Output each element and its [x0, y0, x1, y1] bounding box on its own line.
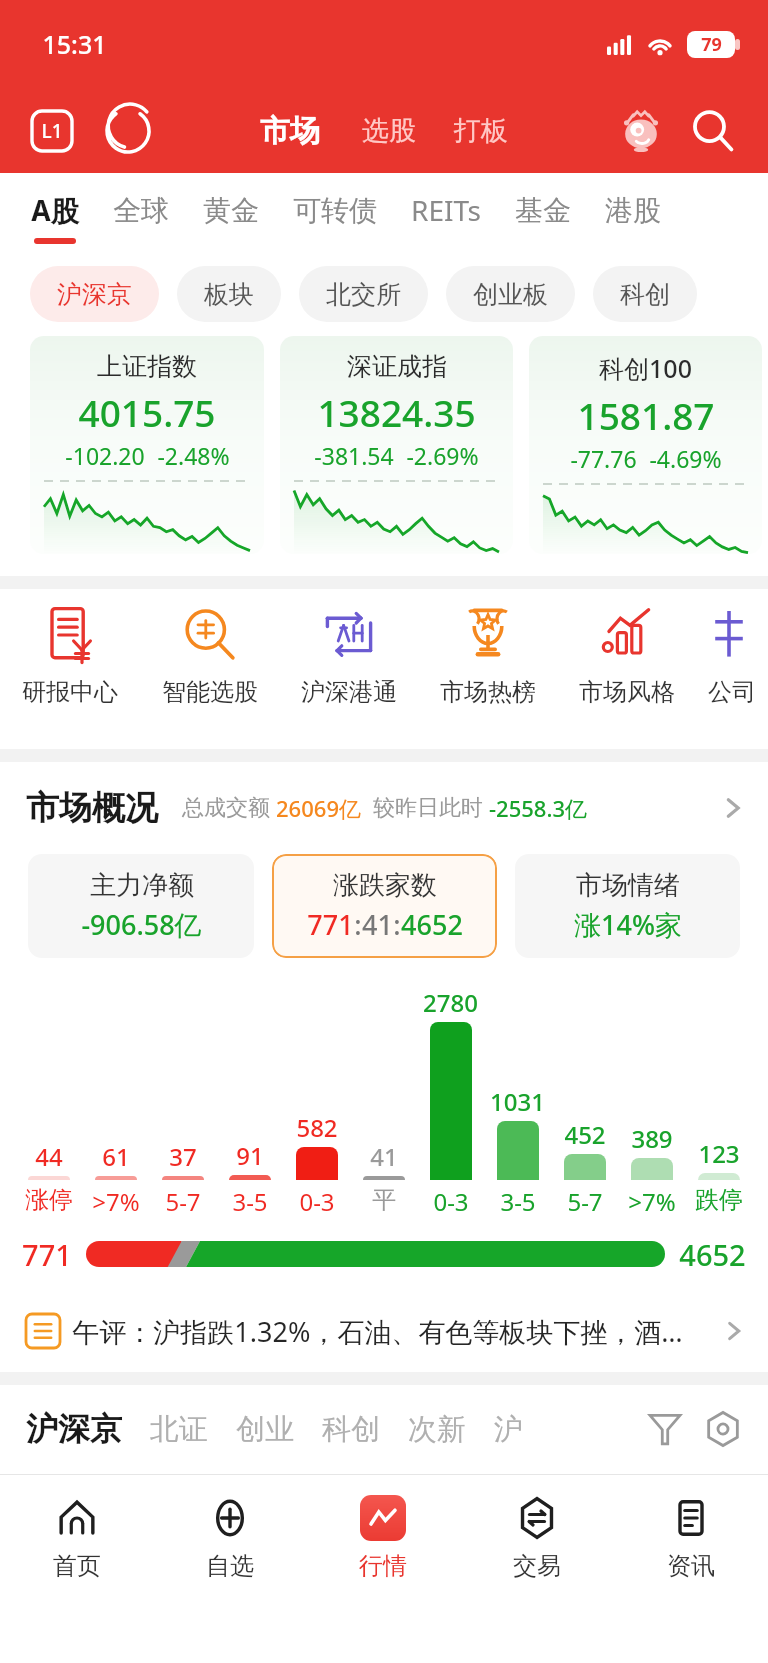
button[interactable]: 可转债 — [276, 173, 394, 252]
staticText: 自选 — [206, 1551, 254, 1581]
button[interactable]: 港股 — [588, 173, 678, 252]
staticText: -77.76 — [570, 443, 637, 474]
staticText: 涨14%家 — [574, 906, 682, 943]
button[interactable]: 市场风格 — [557, 605, 696, 749]
staticText: 44 — [35, 1140, 63, 1173]
button[interactable]: 61 — [82, 1140, 149, 1180]
button[interactable]: 44 — [16, 1140, 82, 1180]
staticText: 0-3 — [433, 1185, 469, 1218]
staticText: 1031 — [490, 1085, 545, 1118]
staticText: 79 — [701, 32, 722, 57]
button[interactable]: 主力净额 — [28, 854, 254, 958]
button[interactable]: 123 — [685, 1137, 752, 1180]
button[interactable]: 创业 — [236, 1411, 322, 1448]
button[interactable]: 2780 — [417, 986, 484, 1180]
button[interactable]: 资讯 — [614, 1475, 768, 1605]
button[interactable]: 1031 — [484, 1085, 551, 1180]
button[interactable]: 市场热榜 — [418, 605, 557, 749]
button[interactable]: 首页 — [0, 1475, 153, 1605]
button[interactable]: 科创 — [593, 266, 697, 322]
button[interactable]: 37 — [149, 1140, 216, 1180]
staticText: A股 — [31, 191, 79, 229]
staticText: 5-7 — [567, 1185, 603, 1218]
button[interactable]: 市场 — [248, 112, 332, 150]
staticText: 可转债 — [293, 193, 377, 228]
button[interactable]: 全球 — [96, 173, 186, 252]
button[interactable]: 公司 — [696, 605, 768, 749]
staticText: >7% — [628, 1185, 676, 1218]
button[interactable]: Assistant — [612, 102, 670, 160]
button[interactable]: 自选 — [153, 1475, 306, 1605]
staticText: 创业 — [236, 1411, 294, 1448]
button[interactable]: 北证 — [150, 1411, 236, 1448]
button[interactable]: Search — [684, 102, 742, 160]
staticText: : — [354, 906, 362, 943]
staticText: 全球 — [113, 193, 169, 228]
button[interactable]: 北交所 — [299, 266, 428, 322]
button[interactable]: 行情 — [306, 1475, 460, 1605]
staticText: 26069亿 — [276, 793, 361, 823]
staticText: 市场概况 — [26, 787, 158, 829]
staticText: -2.69% — [406, 440, 479, 471]
button[interactable]: 389 — [618, 1122, 685, 1180]
staticText: 北交所 — [326, 279, 401, 310]
staticText: 涨停 — [25, 1185, 73, 1215]
button[interactable]: 41 — [350, 1140, 417, 1180]
button[interactable]: 研报中心 — [0, 605, 140, 749]
button[interactable]: Filter — [638, 1402, 692, 1456]
staticText: 2780 — [423, 986, 478, 1019]
button[interactable]: 582 — [283, 1111, 350, 1180]
staticText: 交易 — [513, 1551, 561, 1581]
staticText: : — [393, 906, 401, 943]
button[interactable]: 市场概况 — [0, 762, 768, 854]
button[interactable]: 市场情绪 — [515, 854, 740, 958]
staticText: 4015.75 — [78, 387, 216, 437]
button[interactable]: 选股 — [350, 114, 428, 148]
button[interactable]: 午评：沪指跌1.32%，石油、有色等板块下挫，酒… — [0, 1290, 768, 1372]
button[interactable]: 智能选股 — [140, 605, 279, 749]
button[interactable]: 深证成指 — [280, 336, 513, 554]
button[interactable]: 沪 — [494, 1411, 533, 1448]
button[interactable]: A股 — [14, 173, 96, 252]
button[interactable]: Level 1 quotes — [26, 105, 78, 157]
staticText: 13824.35 — [317, 387, 476, 437]
button[interactable]: 黄金 — [186, 173, 276, 252]
staticText: 市场情绪 — [576, 869, 680, 902]
staticText: 沪深京 — [57, 279, 132, 310]
button[interactable]: 91 — [216, 1139, 283, 1180]
button[interactable]: 创业板 — [446, 266, 575, 322]
button[interactable]: 科创100 — [529, 336, 762, 554]
staticText: 41 — [370, 1140, 398, 1173]
button[interactable]: 板块 — [177, 266, 281, 322]
staticText: 市场热榜 — [440, 677, 536, 707]
staticText: 次新 — [408, 1411, 466, 1448]
staticText: 771 — [22, 1235, 72, 1274]
staticText: 上证指数 — [97, 351, 197, 382]
staticText: -2558.3亿 — [489, 793, 587, 823]
button[interactable]: 452 — [551, 1118, 618, 1180]
staticText: 37 — [169, 1140, 197, 1173]
button[interactable]: 沪深京 — [30, 266, 159, 322]
button[interactable]: 沪深港通 — [279, 605, 418, 749]
button[interactable]: 打板 — [442, 114, 520, 148]
button[interactable]: 次新 — [408, 1411, 494, 1448]
button[interactable]: Night mode — [102, 105, 154, 157]
button[interactable]: 沪深京 — [26, 1409, 150, 1449]
staticText: 打板 — [454, 114, 508, 148]
button[interactable]: 交易 — [460, 1475, 614, 1605]
button[interactable]: 涨跌家数 — [272, 854, 497, 958]
button[interactable]: 科创 — [322, 1411, 408, 1448]
button[interactable]: 上证指数 — [30, 336, 264, 554]
button[interactable]: Settings — [696, 1402, 750, 1456]
staticText: -906.58亿 — [81, 906, 202, 943]
button[interactable]: REITs — [394, 173, 498, 252]
staticText: REITs — [411, 191, 481, 229]
button[interactable]: 基金 — [498, 173, 588, 252]
